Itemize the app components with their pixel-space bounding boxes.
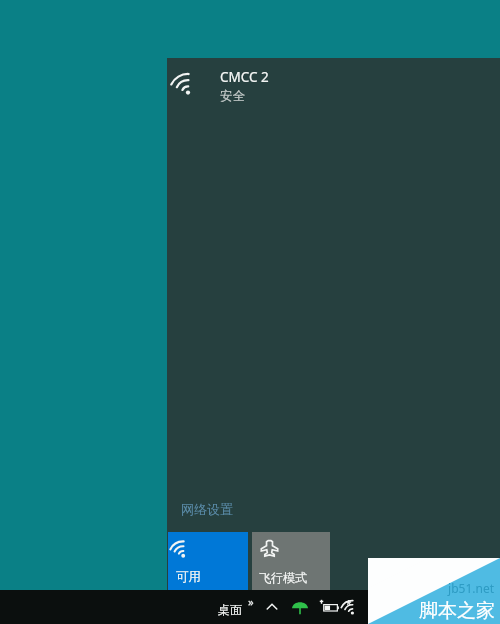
button[interactable]: 网络设置 <box>181 499 233 519</box>
staticText: 可用 <box>176 569 201 585</box>
staticText: * <box>346 597 352 611</box>
staticText: 桌面 <box>218 602 242 617</box>
staticText: 脚本之家 <box>419 599 495 623</box>
button[interactable]: Security <box>290 597 310 617</box>
button[interactable]: Network <box>346 597 366 617</box>
button[interactable]: 可用 <box>168 532 248 590</box>
staticText: jb51.net <box>448 580 494 596</box>
button[interactable]: 飞行模式 <box>252 532 330 590</box>
button[interactable]: CMCC 2 <box>167 58 500 114</box>
button[interactable]: Battery charging <box>318 597 340 617</box>
staticText: » <box>248 594 254 609</box>
button[interactable]: 桌面 <box>218 598 242 617</box>
staticText: CMCC 2 <box>220 68 269 86</box>
staticText: 安全 <box>220 88 245 104</box>
button[interactable]: Show hidden icons <box>262 597 282 617</box>
staticText: 飞行模式 <box>259 570 307 585</box>
staticText: 网络设置 <box>181 501 233 517</box>
